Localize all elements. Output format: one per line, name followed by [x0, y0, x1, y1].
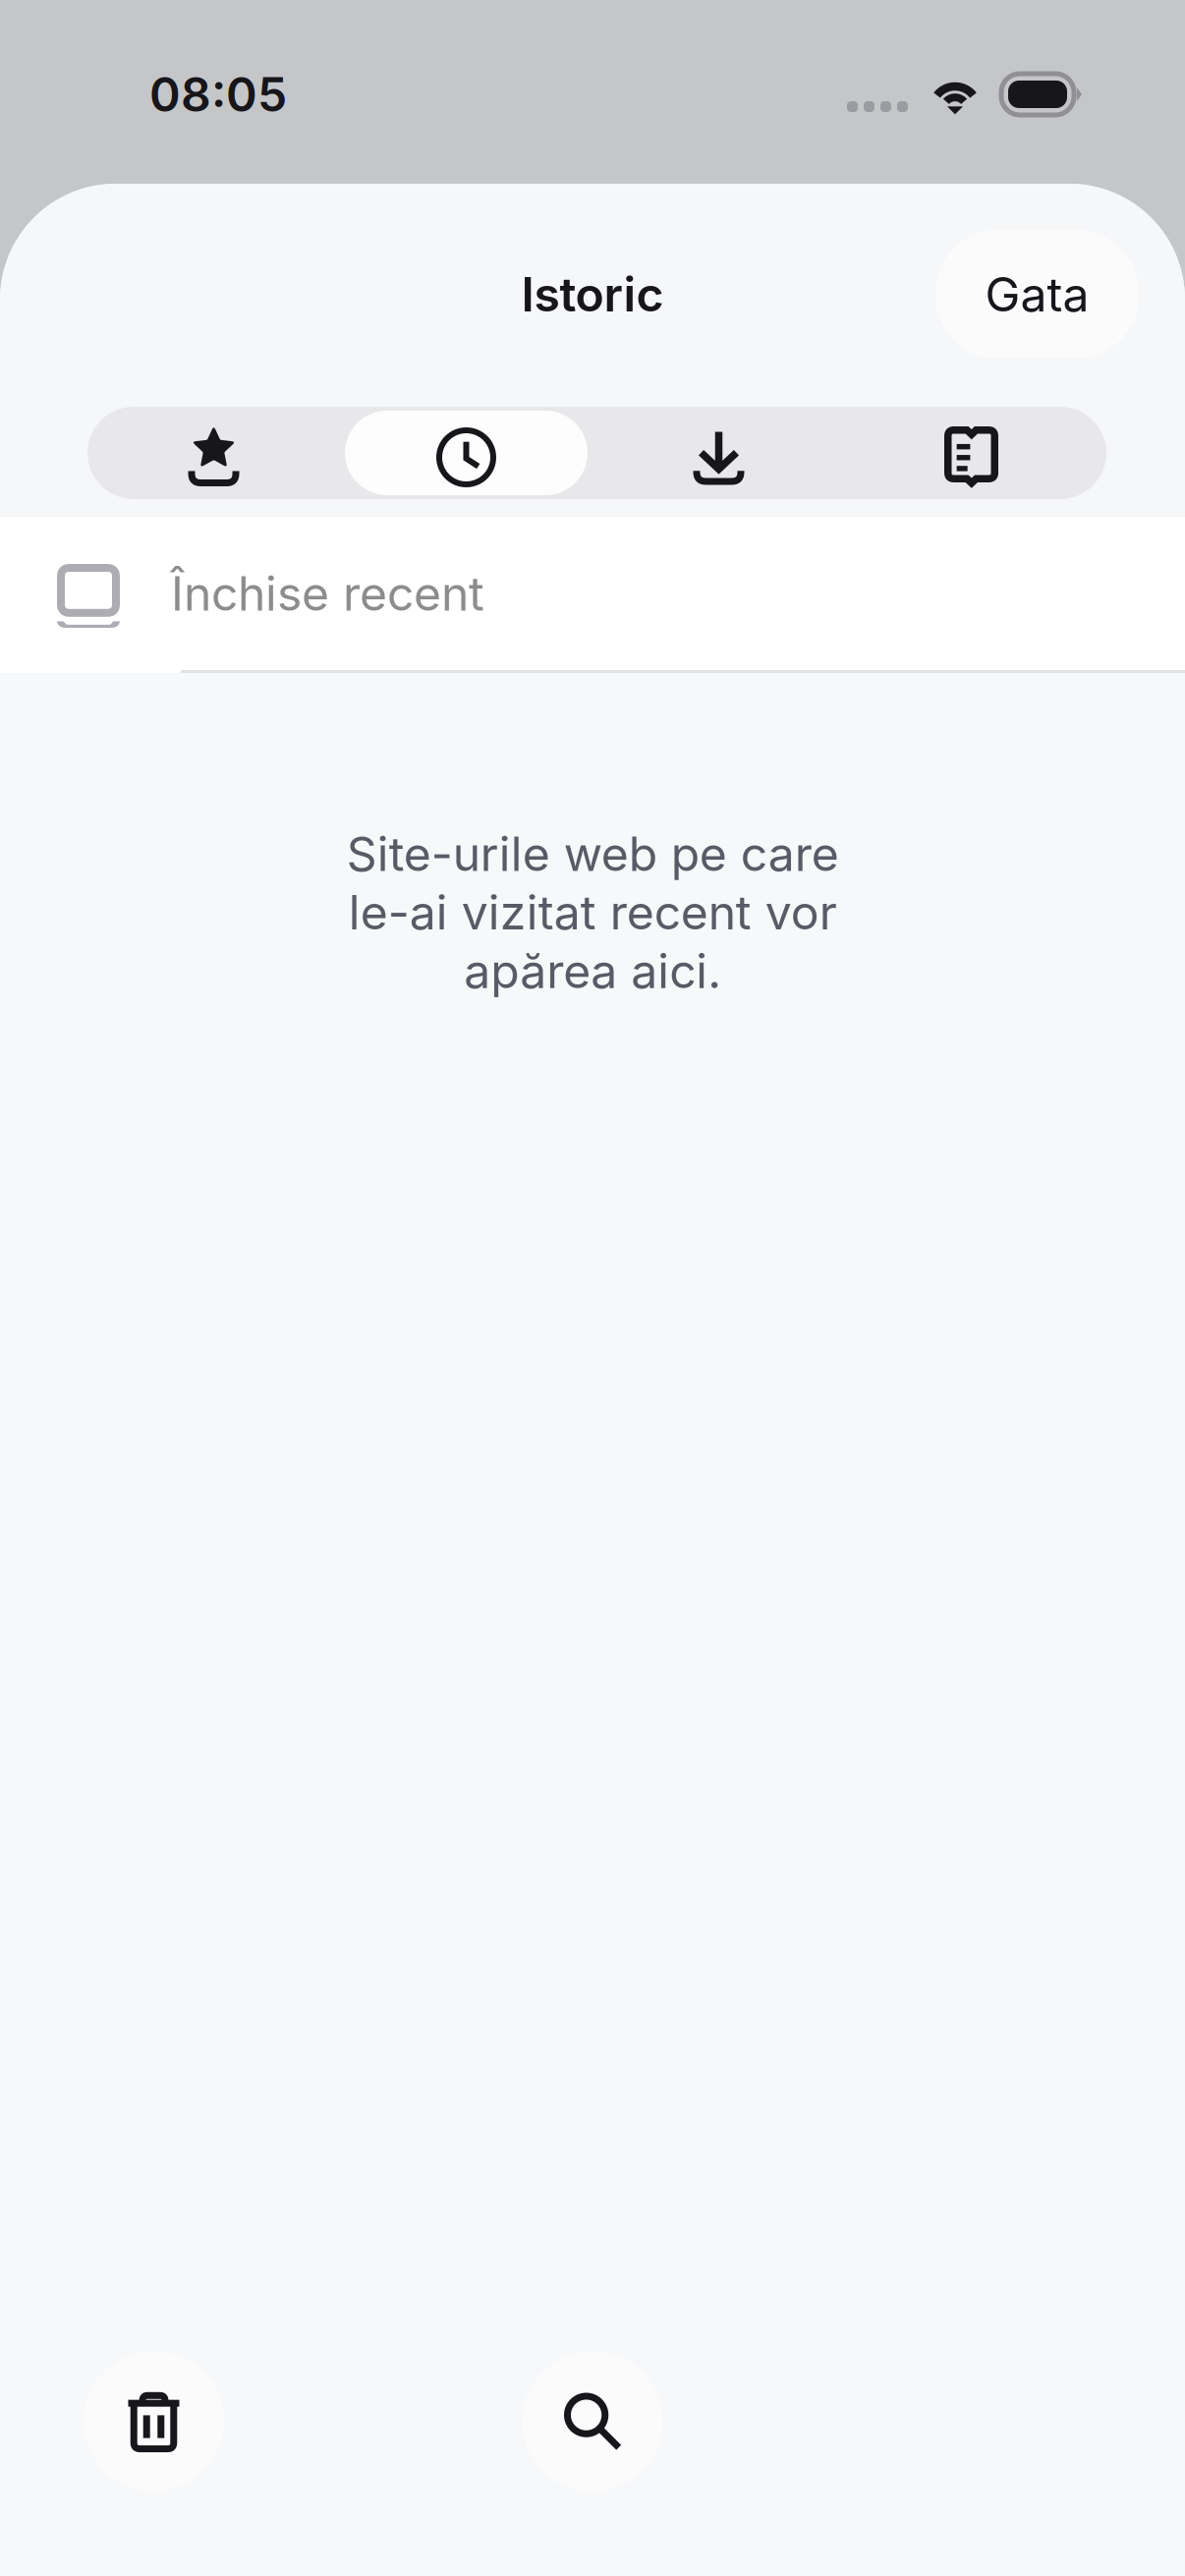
staticText: Istoric	[521, 266, 664, 323]
button[interactable]: Gata	[935, 230, 1139, 359]
staticText: Închise recent	[171, 565, 484, 622]
staticText: Site-urile web pe care le-ai vizitat rec…	[346, 825, 839, 999]
button[interactable]: Listă de lectură	[845, 407, 1098, 499]
staticText: Gata	[985, 266, 1089, 323]
button[interactable]: Descărcări	[592, 407, 845, 499]
button[interactable]: Închise recent	[0, 517, 1185, 673]
button[interactable]: Istoric	[340, 407, 592, 499]
button[interactable]: Marcaje	[87, 407, 340, 499]
button[interactable]: Caută	[522, 2351, 663, 2492]
staticText: 08:05	[149, 66, 287, 123]
button[interactable]: Șterge istoricul	[84, 2351, 224, 2492]
